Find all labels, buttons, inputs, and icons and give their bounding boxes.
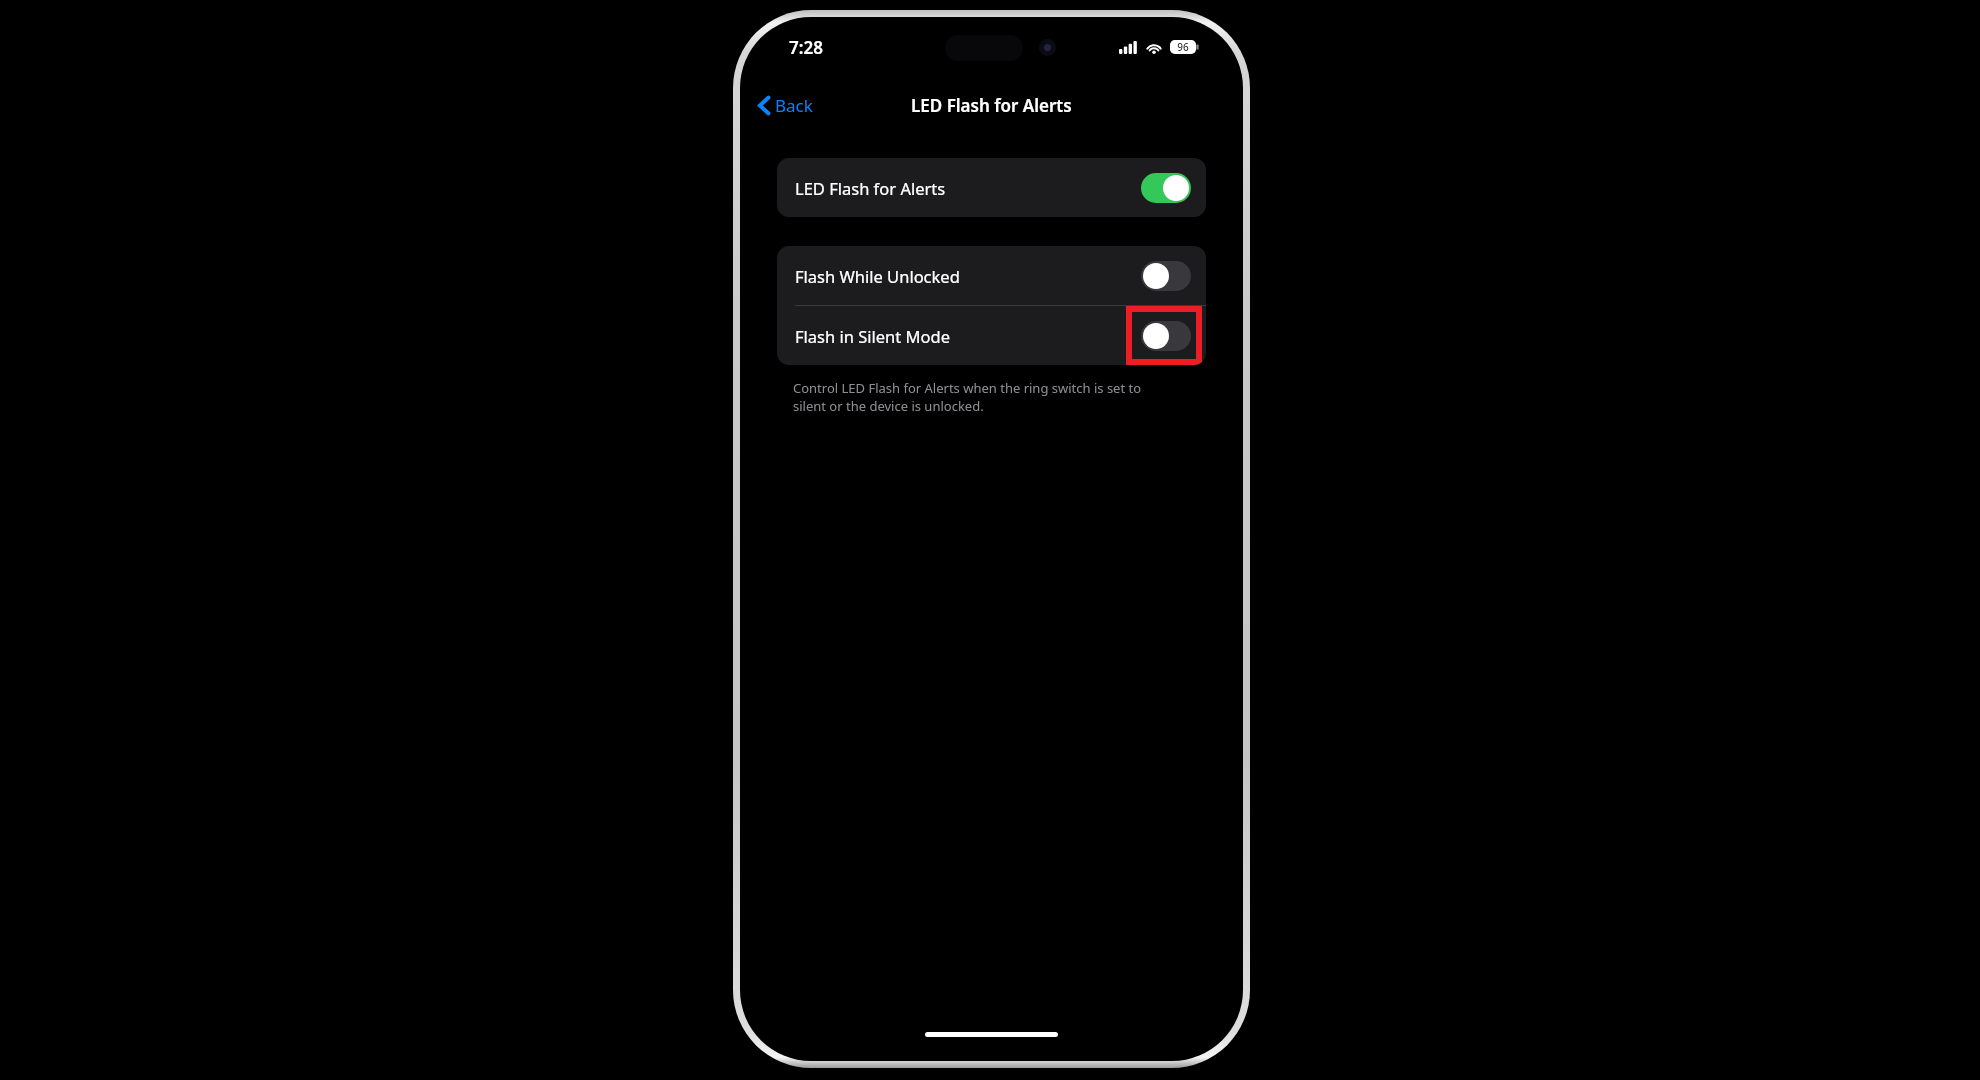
staticText: Control LED Flash for Alerts when the ri… — [793, 379, 1142, 397]
button[interactable]: Flash While Unlocked — [1141, 261, 1191, 291]
button[interactable]: Back — [750, 89, 821, 122]
button[interactable]: Flash in Silent Mode — [777, 306, 1206, 365]
staticText: Flash While Unlocked — [795, 265, 960, 287]
staticText: Flash in Silent Mode — [795, 325, 950, 347]
staticText: LED Flash for Alerts — [795, 177, 946, 199]
staticText: LED Flash for Alerts — [911, 94, 1072, 117]
staticText: 7:28 — [789, 36, 823, 59]
staticText: silent or the device is unlocked. — [793, 397, 984, 415]
button[interactable]: LED Flash for Alerts — [1141, 173, 1191, 203]
staticText: 96 — [1170, 40, 1196, 54]
button[interactable]: Flash in Silent Mode — [1141, 321, 1191, 351]
button[interactable]: LED Flash for Alerts — [777, 158, 1206, 217]
staticText: Back — [775, 94, 813, 117]
button[interactable]: Flash While Unlocked — [777, 246, 1206, 305]
